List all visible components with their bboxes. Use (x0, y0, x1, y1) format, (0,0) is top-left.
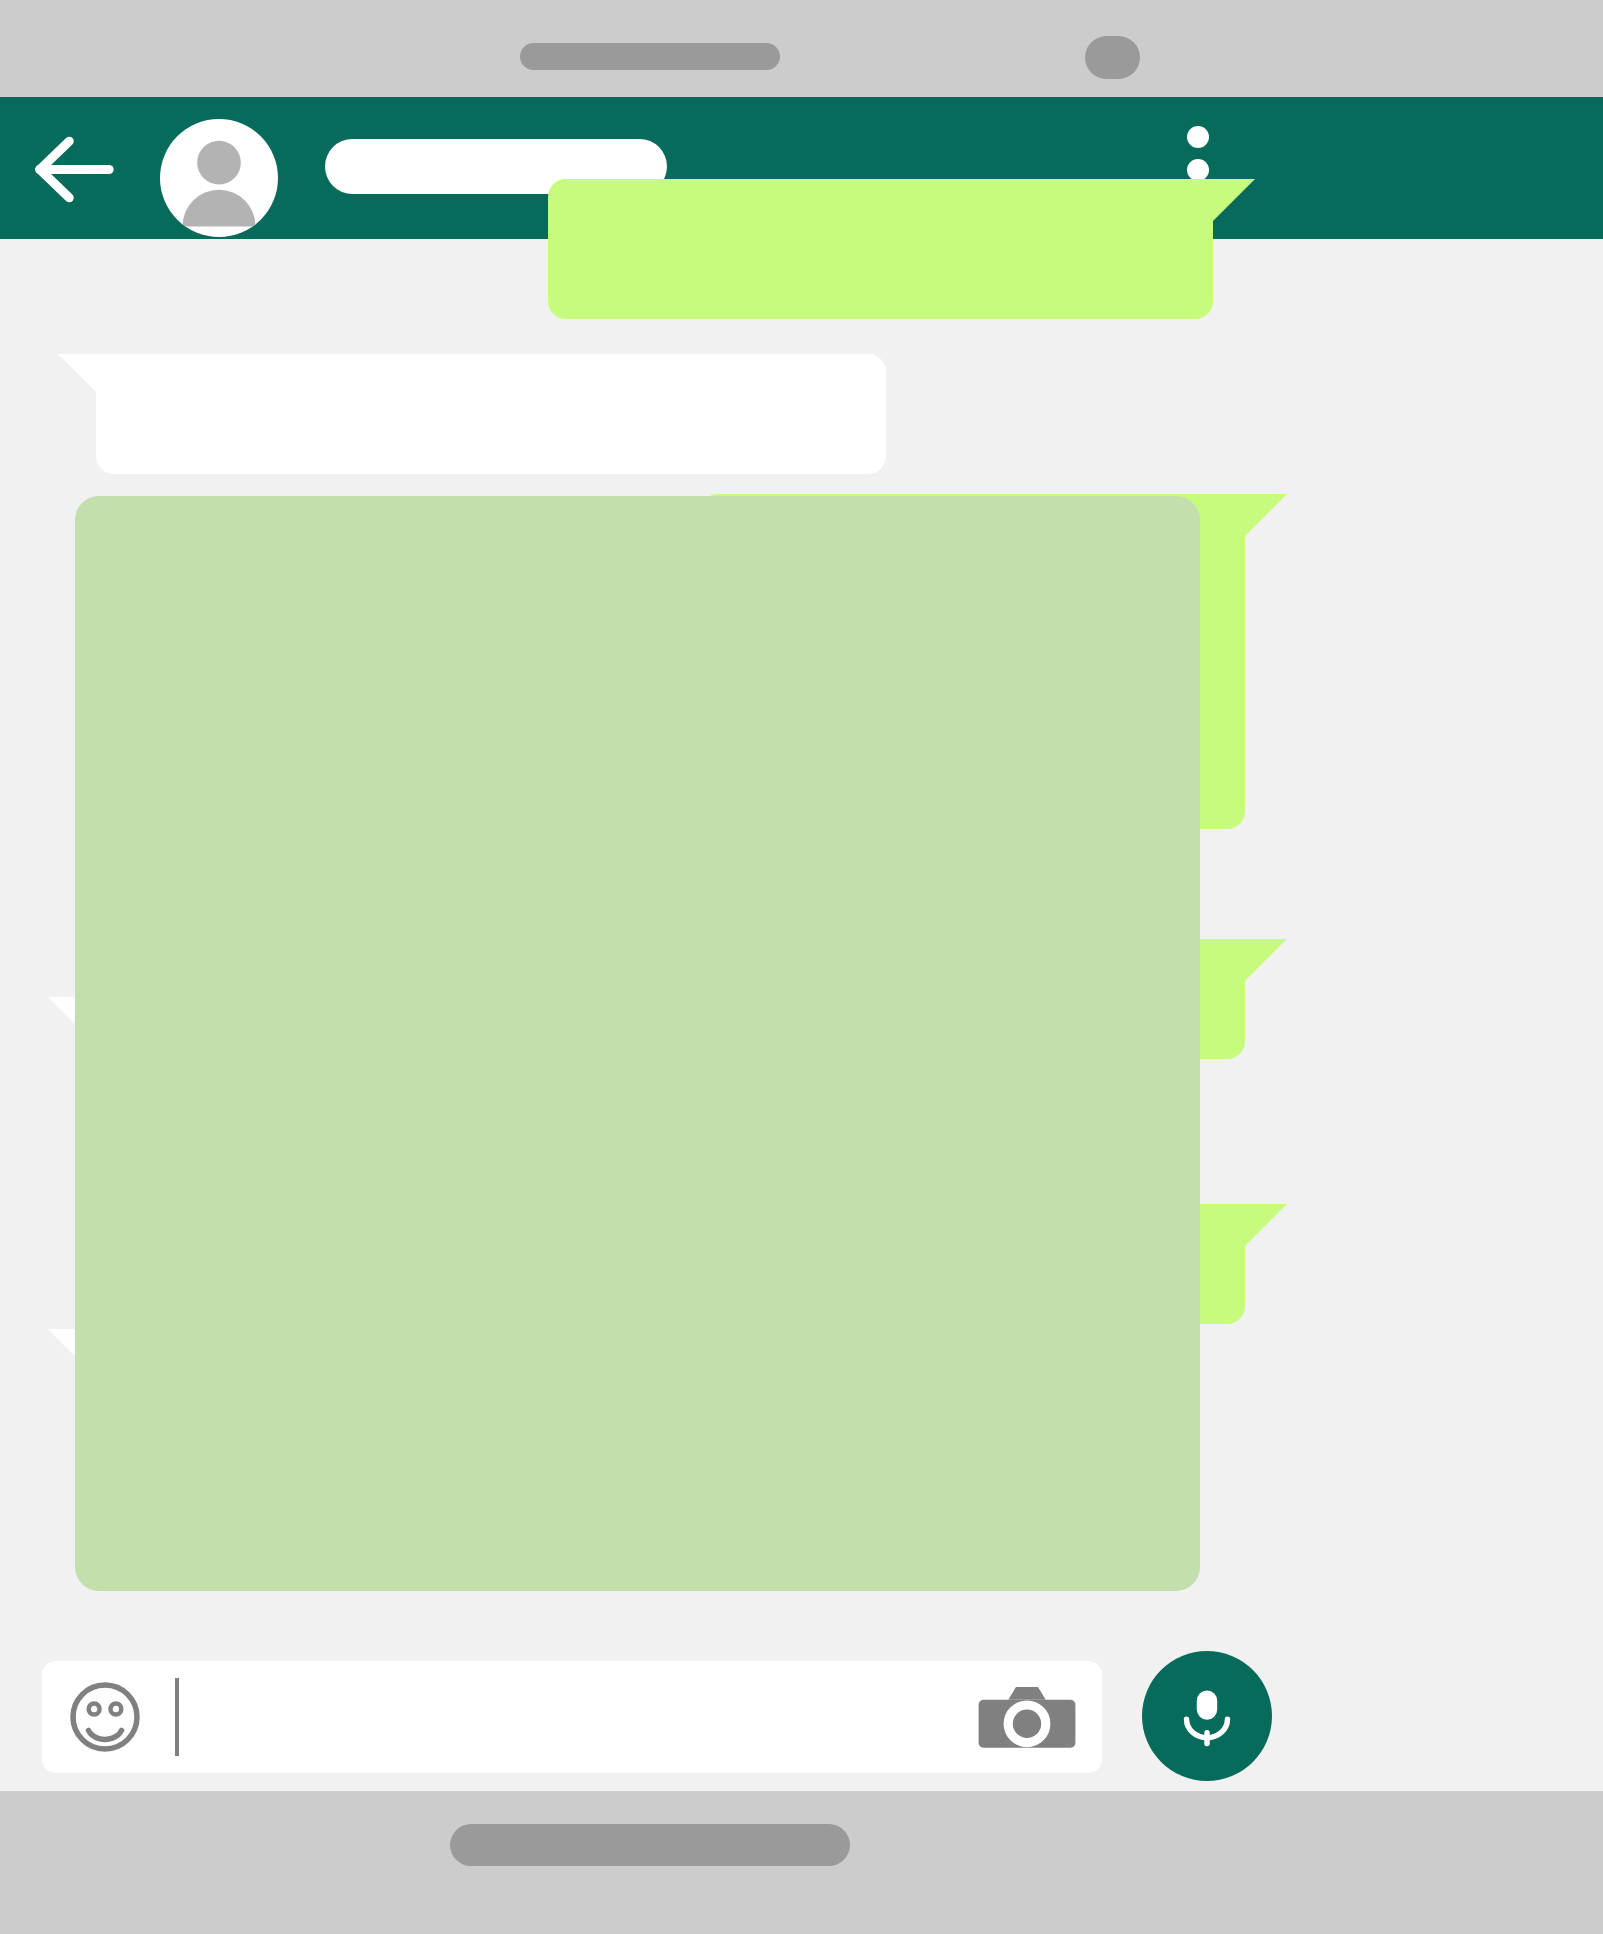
button[interactable] (548, 179, 1213, 319)
button[interactable]: More options (1150, 122, 1245, 217)
button[interactable] (700, 1204, 1245, 1324)
button[interactable]: Camera (42, 1661, 1102, 1773)
button[interactable] (700, 494, 1245, 829)
button[interactable]: Voice message (1142, 1651, 1272, 1781)
button[interactable]: Back (22, 117, 127, 222)
button[interactable] (325, 139, 667, 194)
button[interactable] (700, 939, 1245, 1059)
button[interactable]: Camera (972, 1679, 1082, 1759)
button[interactable]: Contact avatar (160, 119, 278, 237)
